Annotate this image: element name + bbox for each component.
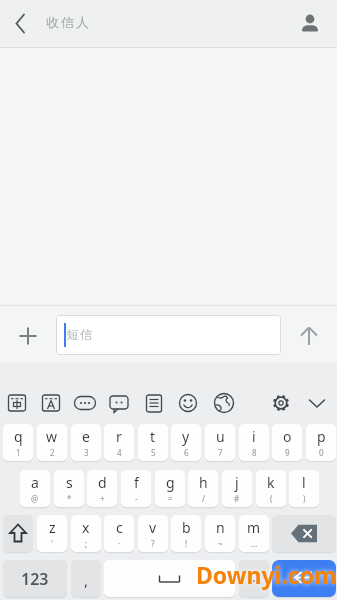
staticText: 2 — [50, 447, 55, 458]
staticText: 短信 — [66, 327, 93, 343]
button[interactable]: 123 — [3, 560, 67, 597]
staticText: = — [168, 493, 173, 504]
staticText: y — [182, 427, 190, 446]
button[interactable] — [141, 390, 167, 416]
button[interactable]: u — [205, 424, 235, 461]
button[interactable]: p — [306, 424, 336, 461]
button[interactable]: . — [239, 560, 269, 597]
staticText: ~ — [218, 538, 223, 549]
staticText: 8 — [252, 447, 257, 458]
button[interactable] — [72, 390, 98, 416]
button[interactable]: y — [171, 424, 201, 461]
staticText: p — [317, 427, 326, 446]
button[interactable] — [304, 390, 330, 416]
staticText: + — [100, 493, 105, 504]
button[interactable] — [268, 390, 294, 416]
button[interactable] — [3, 515, 33, 552]
staticText: z — [49, 518, 56, 537]
staticText: b — [182, 518, 191, 537]
button[interactable]: b — [171, 515, 201, 552]
staticText: - — [135, 493, 138, 504]
button[interactable]: f — [121, 470, 151, 507]
staticText: s — [66, 473, 73, 492]
staticText: e — [82, 427, 90, 446]
button[interactable]: o — [272, 424, 302, 461]
button[interactable]: e — [71, 424, 101, 461]
button[interactable]: q — [3, 424, 33, 461]
button[interactable]: l — [289, 470, 319, 507]
button[interactable] — [4, 390, 30, 416]
button[interactable]: r — [104, 424, 134, 461]
staticText: . — [252, 567, 256, 586]
button[interactable]: , — [71, 560, 101, 597]
staticText: ( — [270, 493, 273, 504]
staticText: 0 — [319, 447, 324, 458]
button[interactable]: 短信 — [56, 315, 281, 355]
staticText: @ — [31, 493, 39, 504]
button[interactable] — [211, 390, 237, 416]
button[interactable] — [38, 390, 64, 416]
staticText: 6 — [184, 447, 189, 458]
staticText: 1 — [16, 447, 21, 458]
button[interactable]: j — [222, 470, 252, 507]
staticText: 收信人 — [45, 14, 90, 30]
staticText: m — [247, 518, 261, 537]
button[interactable]: t — [138, 424, 168, 461]
button[interactable]: s — [54, 470, 84, 507]
staticText: o — [283, 427, 292, 446]
button[interactable]: g — [155, 470, 185, 507]
button[interactable]: x — [71, 515, 101, 552]
staticText: ) — [303, 493, 306, 504]
button[interactable]: i — [239, 424, 269, 461]
staticText: ; — [85, 538, 88, 549]
staticText: 4 — [117, 447, 122, 458]
button[interactable] — [272, 515, 336, 552]
button[interactable]: v — [138, 515, 168, 552]
staticText: x — [82, 518, 90, 537]
button[interactable] — [14, 322, 42, 350]
staticText: a — [31, 473, 39, 492]
staticText: v — [149, 518, 157, 537]
staticText: r — [116, 427, 122, 446]
staticText: ! — [185, 538, 188, 549]
staticText: h — [199, 473, 208, 492]
staticText: i — [252, 427, 256, 446]
button[interactable] — [106, 390, 132, 416]
button[interactable]: h — [188, 470, 218, 507]
button[interactable] — [175, 390, 201, 416]
button[interactable]: n — [205, 515, 235, 552]
staticText: n — [216, 518, 225, 537]
staticText: t — [150, 427, 156, 446]
button[interactable]: w — [37, 424, 67, 461]
staticText: , — [84, 570, 89, 590]
staticText: q — [14, 427, 23, 446]
staticText: j — [235, 473, 239, 492]
button[interactable] — [295, 322, 323, 350]
staticText: l — [302, 473, 306, 492]
button[interactable]: z — [37, 515, 67, 552]
staticText: f — [134, 473, 139, 492]
button[interactable]: m — [239, 515, 269, 552]
staticText: ? — [151, 538, 155, 549]
button[interactable]: a — [20, 470, 50, 507]
button[interactable] — [272, 560, 336, 597]
button[interactable]: k — [256, 470, 286, 507]
staticText: g — [166, 473, 175, 492]
staticText: d — [98, 473, 107, 492]
button[interactable] — [6, 9, 34, 37]
button[interactable] — [104, 560, 235, 597]
button[interactable]: c — [104, 515, 134, 552]
staticText: c — [116, 518, 123, 537]
staticText: u — [216, 427, 225, 446]
staticText: # — [234, 493, 240, 504]
staticText: 3 — [84, 447, 89, 458]
staticText: * — [67, 493, 72, 504]
staticText: 9 — [285, 447, 290, 458]
button[interactable]: d — [87, 470, 117, 507]
staticText: · — [118, 538, 121, 549]
staticText: 5 — [151, 447, 156, 458]
button[interactable] — [296, 8, 324, 36]
staticText: … — [251, 538, 258, 549]
staticText: 7 — [218, 447, 223, 458]
staticText: ' — [51, 538, 53, 549]
